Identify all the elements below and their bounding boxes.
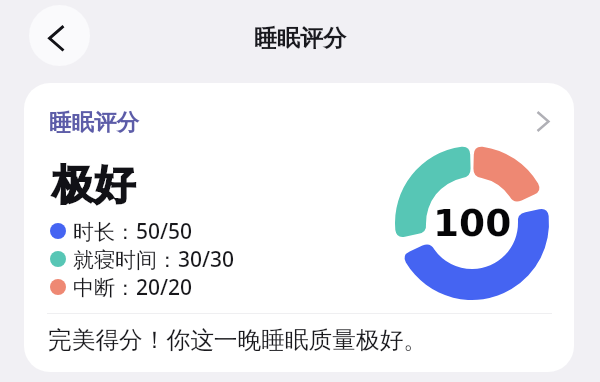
staticText: 极好 — [52, 159, 135, 211]
staticText: 就寝时间：30/30 — [73, 245, 235, 273]
staticText: 100 — [433, 201, 512, 245]
staticText: 中断：20/20 — [73, 273, 193, 301]
staticText: 时长：50/50 — [73, 217, 193, 245]
staticText: 睡眠评分 — [254, 24, 346, 53]
button[interactable]: Back — [29, 5, 90, 66]
staticText: 睡眠评分 — [49, 108, 139, 136]
staticText: 完美得分！你这一晚睡眠质量极好。 — [48, 325, 427, 355]
button[interactable]: Open sleep score details — [524, 99, 562, 137]
